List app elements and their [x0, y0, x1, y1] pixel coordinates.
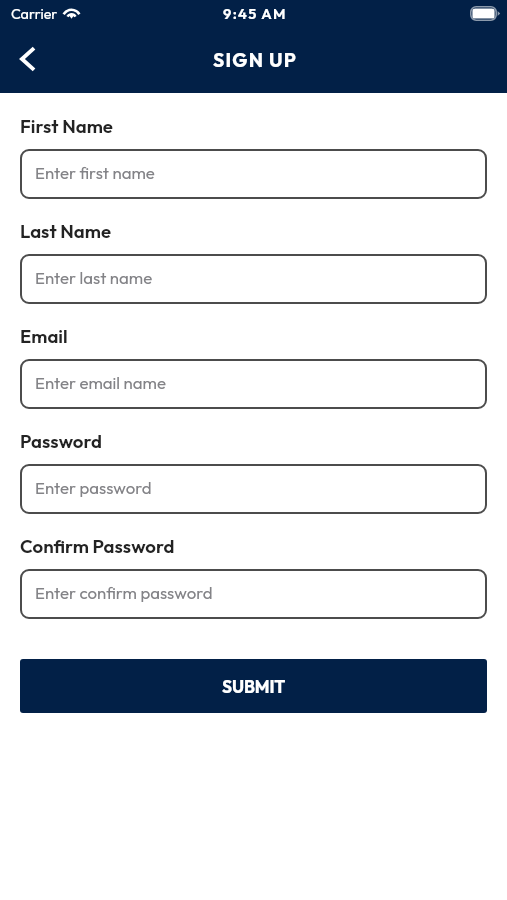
staticText: Last Name: [20, 219, 111, 242]
staticText: Enter email name: [35, 372, 166, 393]
button[interactable]: SUBMIT: [20, 659, 487, 713]
staticText: Password: [20, 429, 102, 452]
staticText: SIGN UP: [213, 48, 298, 72]
staticText: Email: [20, 324, 68, 347]
staticText: Enter confirm password: [35, 582, 213, 603]
staticText: Enter password: [35, 477, 152, 498]
button[interactable]: Enter password: [20, 464, 487, 514]
button[interactable]: Enter last name: [20, 254, 487, 304]
staticText: Carrier: [11, 5, 58, 23]
button[interactable]: Back: [6, 37, 50, 81]
staticText: First Name: [20, 114, 113, 137]
staticText: Enter last name: [35, 267, 153, 288]
staticText: 9:45 AM: [223, 4, 287, 22]
staticText: Enter first name: [35, 162, 155, 183]
button[interactable]: Enter confirm password: [20, 569, 487, 619]
staticText: SUBMIT: [222, 676, 286, 698]
button[interactable]: Enter first name: [20, 149, 487, 199]
button[interactable]: Enter email name: [20, 359, 487, 409]
staticText: Confirm Password: [20, 534, 175, 557]
